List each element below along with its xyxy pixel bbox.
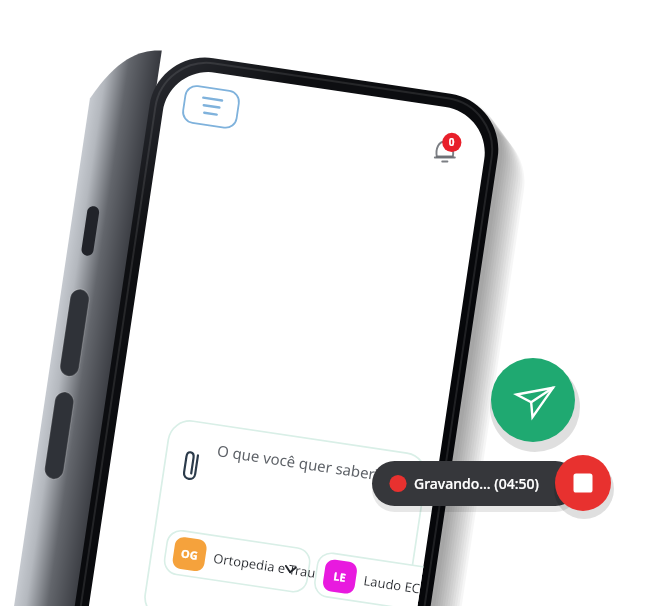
button[interactable]: Parar gravação bbox=[555, 455, 611, 511]
button[interactable]: Laudo ECG bbox=[384, 522, 550, 572]
button[interactable]: Abrir menu bbox=[150, 100, 212, 146]
button[interactable]: Anexar arquivo bbox=[194, 458, 234, 502]
button[interactable]: Ortopedia e Traumatologia bbox=[220, 530, 386, 580]
button[interactable]: Enviar bbox=[491, 358, 575, 442]
button[interactable]: Notificações bbox=[400, 110, 440, 154]
button[interactable]: O que você quer saber? bbox=[230, 438, 440, 480]
